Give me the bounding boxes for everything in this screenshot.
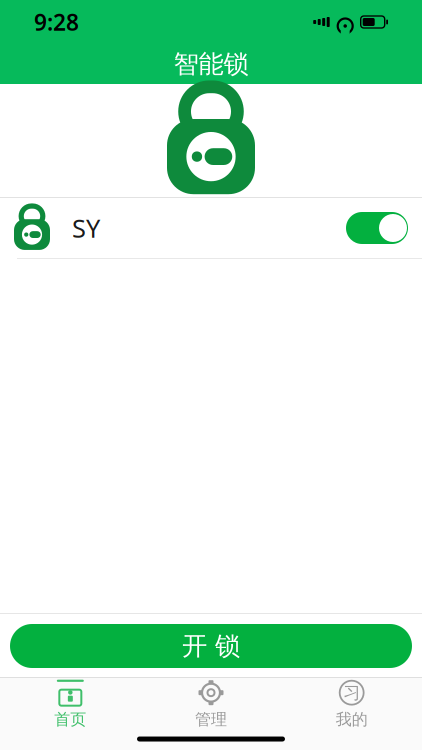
button[interactable]: SY [0, 198, 422, 259]
staticText: 习 [343, 682, 360, 703]
staticText: 管理 [195, 710, 227, 729]
button[interactable]: 习 [281, 673, 422, 733]
staticText: 我的 [336, 710, 368, 729]
button[interactable]: 管理 [141, 673, 281, 733]
staticText: 首页 [54, 710, 86, 729]
staticText: 9:28 [34, 7, 79, 37]
staticText: SY [72, 211, 100, 245]
button[interactable]: 开 锁 [10, 624, 412, 668]
staticText: 开 锁 [182, 630, 240, 661]
button[interactable]: 首页 [0, 673, 141, 733]
staticText: 智能锁 [173, 48, 248, 79]
